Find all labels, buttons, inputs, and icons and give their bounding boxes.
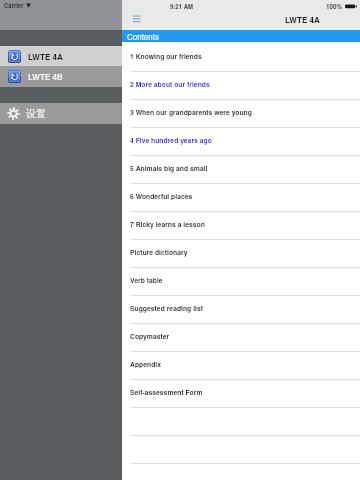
button[interactable]: Menu	[132, 13, 144, 24]
staticText: 100%	[326, 2, 343, 11]
staticText: 2 More about our friends	[130, 79, 210, 89]
staticText: Copymaster	[130, 331, 170, 341]
staticText: Carrier	[4, 1, 24, 10]
other: Settings	[7, 107, 20, 120]
staticText: 1 Knowing our friends	[130, 51, 202, 61]
staticText: 4 Five hundred years ago	[130, 135, 212, 145]
staticText: 5 Animals big and small	[130, 163, 208, 173]
button[interactable]: LWTE 4A	[0, 46, 122, 66]
staticText: 6 Wonderful places	[130, 191, 193, 201]
button[interactable]: 1 Knowing our friends	[122, 44, 360, 72]
button[interactable]: 4 Five hundred years ago	[122, 128, 360, 156]
button[interactable]: Self-assessment Form	[122, 380, 360, 408]
button[interactable]: Copymaster	[122, 324, 360, 352]
staticText: Self-assessment Form	[130, 387, 203, 397]
staticText: LWTE 4A	[28, 51, 63, 62]
button[interactable]: Verb table	[122, 268, 360, 296]
button[interactable]: 6 Wonderful places	[122, 184, 360, 212]
staticText: 7 Ricky learns a lesson	[130, 219, 205, 229]
staticText: 设置	[26, 107, 46, 120]
staticText: Verb table	[130, 275, 163, 285]
button[interactable]: 2 More about our friends	[122, 72, 360, 100]
button[interactable]: Settings	[0, 103, 122, 124]
staticText: LWTE 4B	[28, 71, 63, 82]
button[interactable]: 5 Animals big and small	[122, 156, 360, 184]
staticText: Contents	[127, 31, 159, 42]
staticText: 3 When our grandparents were young	[130, 107, 252, 117]
staticText: Suggested reading list	[130, 303, 203, 313]
button[interactable]: Appendix	[122, 352, 360, 380]
staticText: LWTE 4A	[285, 14, 320, 25]
button[interactable]: Suggested reading list	[122, 296, 360, 324]
button[interactable]: 3 When our grandparents were young	[122, 100, 360, 128]
button[interactable]: LWTE 4B	[0, 66, 122, 87]
staticText: 9:21 AM	[170, 2, 194, 11]
staticText: Appendix	[130, 359, 161, 369]
button[interactable]: Picture dictionary	[122, 240, 360, 268]
button[interactable]: 7 Ricky learns a lesson	[122, 212, 360, 240]
staticText: Picture dictionary	[130, 247, 188, 257]
